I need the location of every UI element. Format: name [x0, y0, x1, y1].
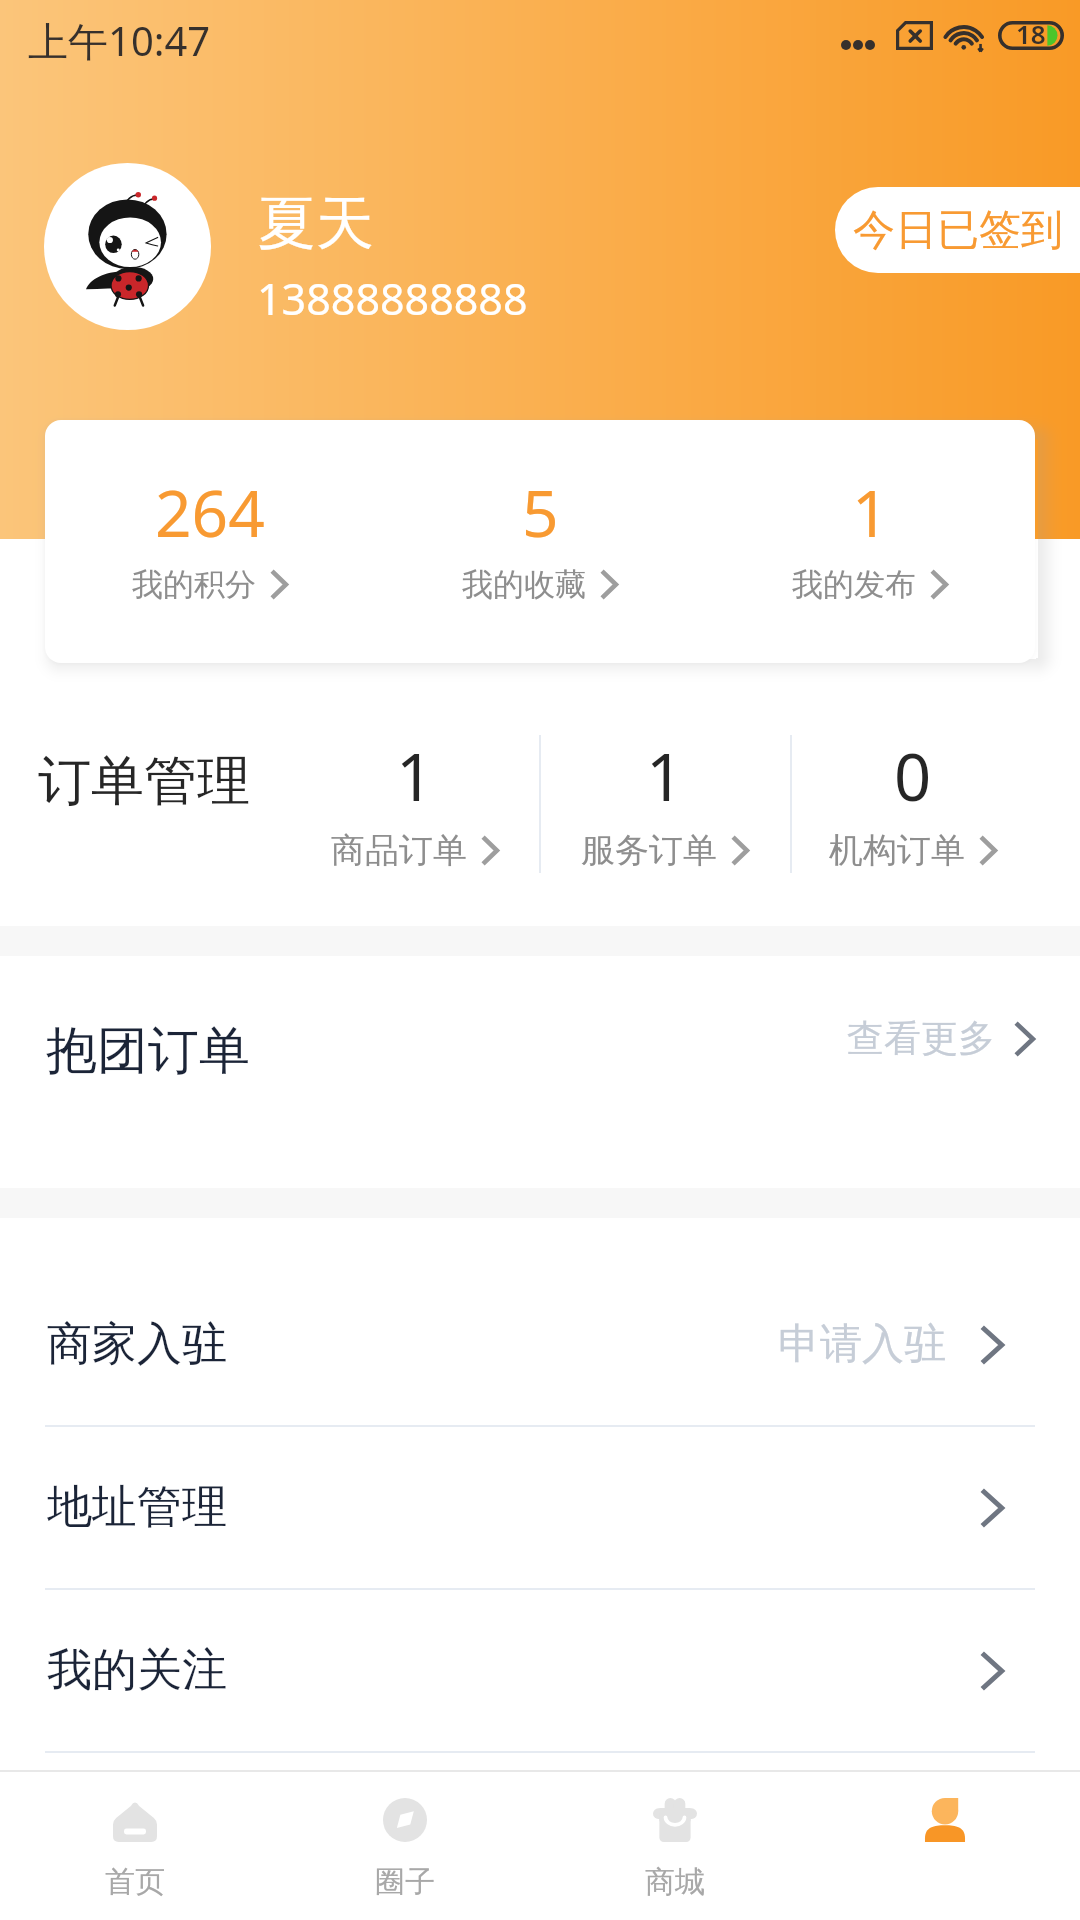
staticText: 18	[1016, 16, 1046, 51]
staticText: 我的积分	[132, 565, 256, 604]
staticText: 上午10:47	[28, 13, 211, 68]
button[interactable]: 商家入驻	[0, 1264, 1080, 1425]
button[interactable]: 地址管理	[0, 1427, 1080, 1588]
staticText: 1	[646, 732, 684, 821]
button[interactable]: 1	[290, 700, 539, 926]
button[interactable]: 264	[45, 420, 375, 663]
button[interactable]: Circle	[270, 1772, 540, 1920]
staticText: 264	[155, 469, 265, 556]
staticText: 商家入驻	[47, 1316, 227, 1373]
staticText: 今日已签到	[853, 204, 1063, 257]
button[interactable]: 我的关注	[0, 1590, 1080, 1751]
staticText: 地址管理	[47, 1479, 227, 1536]
staticText: 商品订单	[331, 829, 467, 872]
staticText: 首页	[105, 1863, 165, 1901]
button[interactable]: Shop	[540, 1772, 810, 1920]
staticText: 查看更多	[847, 1015, 995, 1062]
button[interactable]: Profile	[810, 1772, 1080, 1920]
staticText: 申请入驻	[778, 1318, 946, 1371]
staticText: 13888888888	[257, 269, 528, 328]
staticText: 5	[522, 469, 559, 556]
staticText: 圈子	[375, 1863, 435, 1901]
button[interactable]: 5	[375, 420, 705, 663]
button[interactable]: 今日已签到	[835, 187, 1080, 273]
staticText: 机构订单	[829, 829, 965, 872]
staticText: 1	[852, 469, 889, 556]
staticText: 服务订单	[581, 829, 717, 872]
button[interactable]: 抱团订单	[0, 956, 1080, 1188]
staticText: 订单管理	[38, 748, 250, 815]
staticText: 抱团订单	[46, 1019, 250, 1083]
button[interactable]: Avatar	[44, 163, 211, 330]
staticText: 我的发布	[792, 565, 916, 604]
staticText: 0	[894, 732, 932, 821]
button[interactable]: Home	[0, 1772, 270, 1920]
button[interactable]: 1	[539, 700, 790, 926]
staticText: 1	[396, 732, 434, 821]
button[interactable]: 0	[790, 700, 1035, 926]
staticText: 我的收藏	[462, 565, 586, 604]
staticText: 商城	[645, 1863, 705, 1901]
staticText: 夏天	[258, 187, 374, 260]
button[interactable]: 1	[705, 420, 1035, 663]
staticText: 我的关注	[47, 1642, 227, 1699]
